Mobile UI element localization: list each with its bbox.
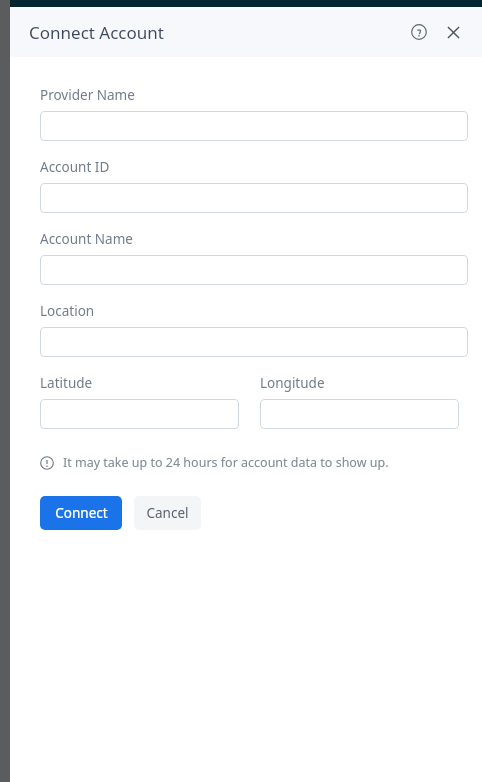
button[interactable] [40,255,468,285]
staticText: Longitude [260,374,325,392]
button[interactable]: Cancel [134,496,201,530]
staticText: Location [40,302,95,320]
staticText: Cancel [146,504,189,522]
staticText: Connect [55,504,108,522]
button[interactable]: Close [438,17,468,47]
button[interactable] [40,399,239,429]
staticText: Provider Name [40,86,135,104]
staticText: Connect Account [29,21,164,44]
button[interactable] [40,183,468,213]
staticText: It may take up to 24 hours for account d… [63,454,389,471]
button[interactable]: Connect [40,496,122,530]
staticText: Latitude [40,374,93,392]
button[interactable]: Help [404,17,434,47]
button[interactable] [40,327,468,357]
staticText: Account ID [40,158,110,176]
button[interactable] [40,111,468,141]
button[interactable] [260,399,459,429]
staticText: Account Name [40,230,133,248]
